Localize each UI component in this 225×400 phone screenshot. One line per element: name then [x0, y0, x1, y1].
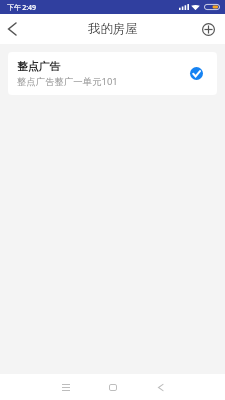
button[interactable]: Back [0, 14, 24, 44]
button[interactable]: Recents [54, 375, 78, 399]
staticText: 整点广告整广一单元101 [17, 75, 118, 88]
button[interactable]: Back [148, 375, 172, 399]
button[interactable]: Add [191, 14, 225, 44]
staticText: 我的房屋 [88, 21, 138, 37]
button[interactable]: Home [101, 375, 125, 399]
staticText: 整点广告 [17, 60, 61, 74]
button[interactable]: 整点广告 [8, 52, 217, 95]
staticText: 下午 2:49 [7, 3, 37, 13]
